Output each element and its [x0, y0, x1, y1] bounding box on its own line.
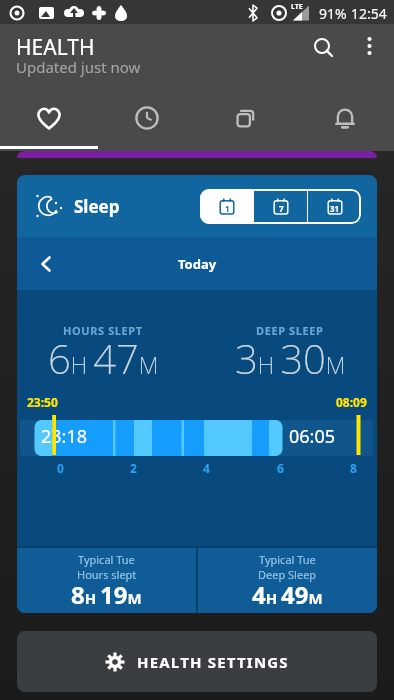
staticText: Hours slept	[77, 567, 137, 582]
staticText: DEEP SLEEP	[256, 323, 324, 338]
staticText: 2	[130, 460, 137, 476]
staticText: 7	[279, 203, 284, 214]
staticText: 1	[225, 203, 230, 214]
button[interactable]: 31	[308, 189, 361, 224]
staticText: LTE	[291, 2, 303, 12]
button[interactable]	[358, 35, 382, 59]
button[interactable]	[295, 90, 394, 149]
button[interactable]	[98, 90, 196, 149]
staticText: 12:54	[351, 4, 387, 23]
button[interactable]	[0, 90, 98, 149]
staticText: Deep Sleep	[258, 567, 317, 582]
staticText: 8	[350, 460, 357, 476]
button[interactable]: HEALTH SETTINGS	[17, 631, 377, 692]
staticText: Sleep	[74, 195, 120, 218]
staticText: 06:05	[289, 424, 336, 449]
button[interactable]: Today	[17, 237, 377, 290]
staticText: 23:50	[27, 394, 58, 410]
staticText: 6	[277, 460, 284, 476]
staticText: 4H 49M	[252, 578, 323, 609]
staticText: Updated just now	[16, 57, 141, 77]
staticText: HEALTH SETTINGS	[137, 652, 289, 672]
staticText: 0	[57, 460, 64, 476]
staticText: 08:09	[336, 394, 367, 410]
staticText: Typical Tue	[78, 552, 135, 567]
staticText: Today	[178, 255, 217, 273]
button[interactable]	[310, 35, 338, 63]
staticText: 8H 19M	[71, 578, 142, 609]
staticText: 91%	[319, 4, 347, 23]
staticText: HEALTH	[16, 33, 95, 62]
button[interactable]: Typical Tue	[17, 548, 196, 613]
button[interactable]	[196, 90, 295, 149]
button[interactable]: 7	[254, 189, 307, 224]
button[interactable]: 1	[200, 189, 253, 224]
staticText: HOURS SLEPT	[63, 323, 143, 338]
button[interactable]: Typical Tue	[198, 548, 377, 613]
staticText: 6H 47M	[48, 331, 159, 385]
staticText: 23:18	[41, 424, 88, 449]
staticText: 4	[203, 460, 210, 476]
staticText: Typical Tue	[259, 552, 316, 567]
staticText: 3H 30M	[235, 331, 346, 385]
staticText: 31	[330, 203, 340, 214]
